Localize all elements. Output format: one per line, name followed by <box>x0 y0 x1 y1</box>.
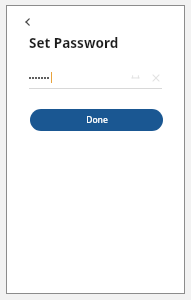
staticText: Set Password <box>29 34 119 52</box>
staticText: Done <box>86 114 108 126</box>
button[interactable]: Show password <box>29 66 162 88</box>
button[interactable]: Show password <box>129 71 142 84</box>
button[interactable]: Back <box>17 11 39 33</box>
button[interactable]: Clear <box>149 71 162 84</box>
button[interactable]: Done <box>30 109 163 131</box>
